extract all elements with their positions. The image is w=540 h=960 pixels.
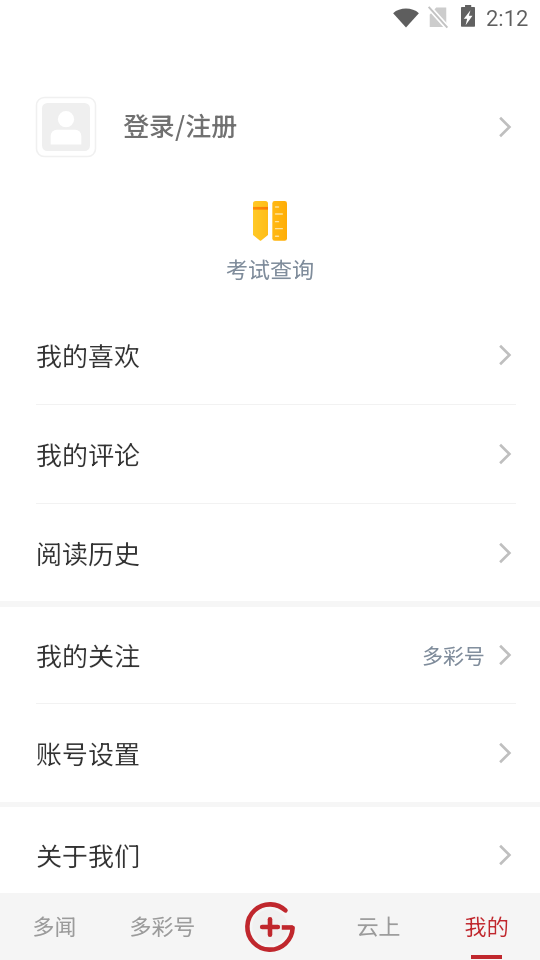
staticText: 2:12 xyxy=(486,6,529,32)
button[interactable]: 登录/注册 xyxy=(0,97,540,157)
staticText: 多彩号 xyxy=(129,909,196,941)
staticText: 阅读历史 xyxy=(36,534,141,572)
button[interactable]: 关于我们 xyxy=(0,807,540,893)
staticText: 登录/注册 xyxy=(123,106,238,144)
button[interactable]: 我的 xyxy=(432,893,540,960)
staticText: 我的关注 xyxy=(36,636,141,674)
button[interactable]: 多彩号 xyxy=(108,893,216,960)
button[interactable]: 多闻 xyxy=(0,893,108,960)
staticText: 关于我们 xyxy=(36,836,141,874)
button[interactable]: 发布 xyxy=(241,898,299,956)
staticText: 多闻 xyxy=(32,909,77,941)
button[interactable]: 我的喜欢 xyxy=(0,306,540,404)
staticText: 我的 xyxy=(464,909,509,941)
staticText: 多彩号 xyxy=(422,640,485,670)
button[interactable]: 我的评论 xyxy=(0,405,540,503)
button[interactable]: 阅读历史 xyxy=(0,504,540,601)
staticText: 我的评论 xyxy=(36,435,141,473)
staticText: 账号设置 xyxy=(36,734,141,772)
button[interactable]: 云上 xyxy=(324,893,432,960)
button[interactable]: 账号设置 xyxy=(0,704,540,802)
button[interactable]: 考试查询 xyxy=(205,201,335,284)
staticText: 我的喜欢 xyxy=(36,336,141,374)
button[interactable]: 我的关注 xyxy=(0,607,540,703)
staticText: 云上 xyxy=(356,909,401,941)
staticText: 考试查询 xyxy=(226,252,315,284)
